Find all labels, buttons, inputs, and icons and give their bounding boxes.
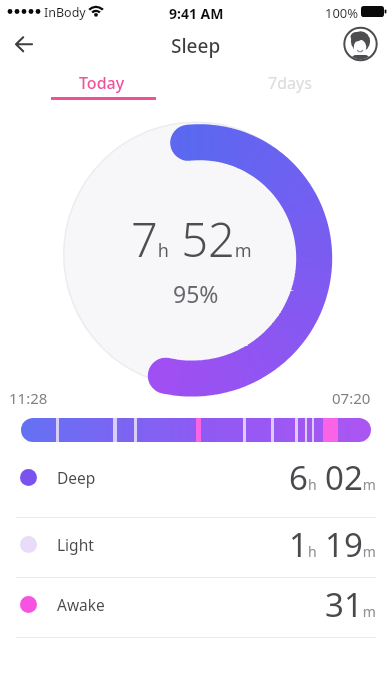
button[interactable]: Awake bbox=[0, 575, 392, 634]
staticText: Deep bbox=[57, 467, 96, 488]
staticText: Light bbox=[57, 534, 94, 555]
staticText: 11:28 bbox=[9, 388, 48, 408]
button[interactable]: Deep bbox=[0, 441, 392, 514]
staticText: 7days bbox=[268, 72, 312, 94]
staticText: Awake bbox=[57, 594, 105, 615]
staticText: 07:20 bbox=[332, 388, 371, 408]
staticText: 100% bbox=[325, 4, 359, 22]
button[interactable] bbox=[2, 24, 46, 68]
staticText: 31m bbox=[325, 582, 376, 627]
staticText: Today bbox=[79, 72, 125, 94]
staticText: 1h 19m bbox=[289, 522, 376, 567]
button[interactable]: Today bbox=[0, 68, 196, 104]
staticText: Sleep bbox=[171, 33, 221, 59]
staticText: 6h 02m bbox=[289, 455, 376, 500]
button[interactable]: Light bbox=[0, 515, 392, 574]
staticText: InBody bbox=[44, 4, 86, 21]
staticText: 7h 52m bbox=[131, 207, 252, 271]
button[interactable]: 7days bbox=[196, 68, 392, 104]
staticText: 9:41 AM bbox=[169, 4, 224, 23]
button[interactable] bbox=[343, 27, 379, 63]
staticText: 95% bbox=[173, 278, 219, 309]
